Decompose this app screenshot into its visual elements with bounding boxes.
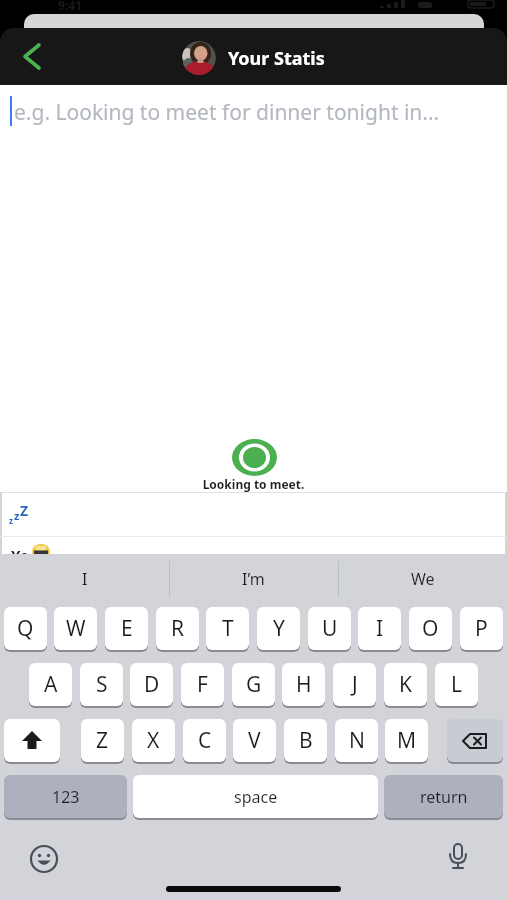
button[interactable]: [18, 40, 46, 74]
staticText: A: [44, 670, 58, 699]
button[interactable]: N: [335, 719, 378, 762]
staticText: return: [420, 786, 468, 808]
staticText: E: [121, 614, 133, 643]
staticText: F: [197, 670, 208, 699]
button[interactable]: D: [130, 663, 173, 706]
button[interactable]: X: [132, 719, 175, 762]
staticText: z: [9, 515, 13, 526]
button[interactable]: K: [384, 663, 427, 706]
button[interactable]: B: [284, 719, 327, 762]
staticText: We: [411, 568, 435, 590]
button[interactable]: [4, 719, 60, 762]
button[interactable]: return: [384, 775, 503, 818]
button[interactable]: M: [385, 719, 428, 762]
button[interactable]: U: [308, 607, 351, 650]
button[interactable]: R: [156, 607, 199, 650]
staticText: Y: [273, 614, 285, 643]
staticText: V: [248, 726, 261, 755]
button[interactable]: I: [0, 554, 169, 604]
button[interactable]: [446, 842, 470, 876]
staticText: 9:41: [58, 0, 82, 13]
staticText: Z: [96, 726, 109, 755]
staticText: U: [322, 614, 338, 643]
button[interactable]: G: [232, 663, 275, 706]
staticText: Your Statis: [228, 46, 325, 71]
staticText: I: [376, 614, 384, 643]
button[interactable]: [447, 719, 503, 762]
button[interactable]: I’m: [169, 554, 338, 604]
staticText: D: [144, 670, 160, 699]
staticText: P: [475, 614, 488, 643]
button[interactable]: J: [333, 663, 376, 706]
staticText: S: [96, 670, 108, 699]
staticText: L: [451, 670, 463, 699]
button[interactable]: space: [133, 775, 378, 818]
button[interactable]: I: [358, 607, 401, 650]
staticText: 123: [52, 786, 80, 808]
staticText: T: [222, 614, 234, 643]
staticText: space: [234, 786, 278, 808]
staticText: e.g. Looking to meet for dinner tonight …: [14, 98, 440, 127]
staticText: H: [296, 670, 312, 699]
button[interactable]: z: [2, 493, 505, 536]
button[interactable]: H: [282, 663, 325, 706]
button[interactable]: [30, 845, 58, 873]
staticText: B: [299, 726, 313, 755]
staticText: G: [246, 670, 262, 699]
button[interactable]: 123: [4, 775, 127, 818]
button[interactable]: T: [206, 607, 249, 650]
staticText: O: [422, 614, 439, 643]
button[interactable]: Yo: [2, 537, 505, 554]
button[interactable]: C: [183, 719, 226, 762]
button[interactable]: A: [29, 663, 72, 706]
staticText: I’m: [242, 568, 265, 590]
staticText: J: [352, 670, 358, 699]
staticText: X: [147, 726, 160, 755]
button[interactable]: L: [435, 663, 478, 706]
staticText: I: [82, 568, 88, 590]
staticText: C: [198, 726, 212, 755]
staticText: Yo: [11, 545, 30, 562]
staticText: K: [399, 670, 412, 699]
button[interactable]: W: [54, 607, 97, 650]
button[interactable]: P: [460, 607, 503, 650]
button[interactable]: Y: [257, 607, 300, 650]
button[interactable]: Z: [81, 719, 124, 762]
button[interactable]: V: [233, 719, 276, 762]
staticText: N: [349, 726, 365, 755]
staticText: Q: [17, 614, 34, 643]
button[interactable]: We: [338, 554, 507, 604]
staticText: R: [171, 614, 185, 643]
staticText: M: [397, 726, 417, 755]
staticText: Z: [20, 501, 29, 520]
staticText: z: [14, 508, 20, 523]
button[interactable]: E: [105, 607, 148, 650]
button[interactable]: S: [80, 663, 123, 706]
staticText: W: [66, 614, 86, 643]
staticText: Looking to meet.: [0, 476, 507, 492]
button[interactable]: O: [409, 607, 452, 650]
button[interactable]: F: [181, 663, 224, 706]
button[interactable]: Q: [4, 607, 47, 650]
